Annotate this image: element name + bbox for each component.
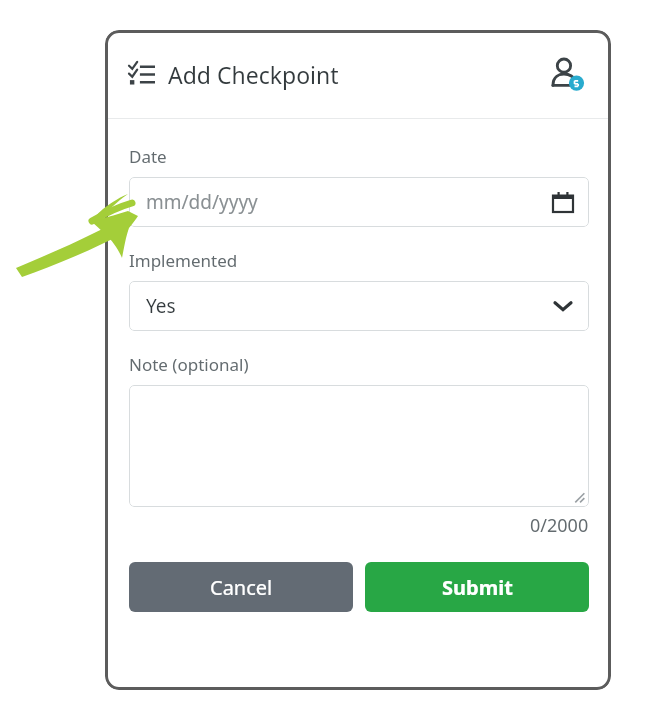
staticText: Cancel xyxy=(210,574,273,601)
button[interactable]: mm/dd/yyyy xyxy=(129,177,589,227)
staticText: Submit xyxy=(442,574,513,601)
button[interactable]: Cancel xyxy=(129,562,353,612)
button[interactable]: Submit xyxy=(365,562,589,612)
button[interactable]: Yes xyxy=(129,281,589,331)
staticText: mm/dd/yyyy xyxy=(146,189,258,215)
staticText: Add Checkpoint xyxy=(168,59,339,90)
staticText: Implemented xyxy=(129,249,238,272)
button[interactable]: Participants xyxy=(545,52,589,96)
staticText: 0/2000 xyxy=(530,513,589,538)
button[interactable] xyxy=(129,385,589,507)
staticText: Date xyxy=(129,145,167,168)
staticText: Yes xyxy=(146,293,176,319)
staticText: Note (optional) xyxy=(129,353,249,376)
